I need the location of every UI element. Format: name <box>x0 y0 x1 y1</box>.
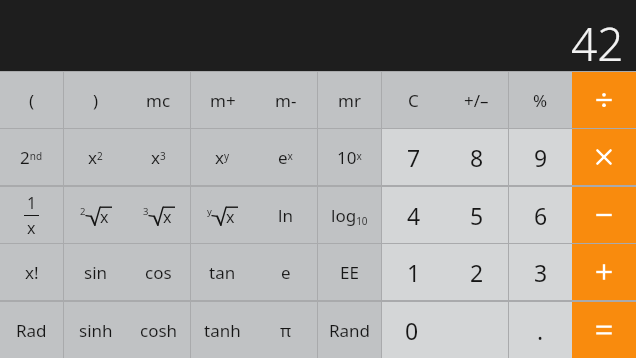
button[interactable]: ex <box>254 129 317 185</box>
staticText: Rad <box>16 319 47 342</box>
staticText: 9 <box>534 142 548 173</box>
button[interactable]: π <box>254 302 317 358</box>
staticText: 7 <box>407 142 421 173</box>
button[interactable]: Rad <box>0 302 63 358</box>
button[interactable]: e <box>254 244 317 300</box>
staticText: EE <box>340 261 359 284</box>
button[interactable]: ) <box>64 72 127 128</box>
staticText: cos <box>145 261 172 284</box>
button[interactable]: 5 <box>445 187 508 243</box>
button[interactable]: 3 <box>127 187 190 243</box>
button[interactable]: 1 <box>0 187 63 243</box>
staticText: C <box>408 89 419 112</box>
button[interactable]: 8 <box>445 129 508 185</box>
staticText: log10 <box>331 204 368 227</box>
button[interactable]: xy <box>191 129 254 185</box>
button[interactable]: ( <box>0 72 63 128</box>
staticText: x3 <box>151 146 166 169</box>
button[interactable]: 9 <box>509 129 572 185</box>
button[interactable]: tan <box>191 244 254 300</box>
staticText: x <box>226 206 235 228</box>
staticText: 2 <box>80 205 86 218</box>
button[interactable]: 4 <box>382 187 445 243</box>
staticText: 2nd <box>20 146 43 169</box>
button[interactable]: cos <box>127 244 190 300</box>
button[interactable]: sinh <box>64 302 127 358</box>
staticText: 5 <box>470 200 484 231</box>
staticText: mc <box>146 89 171 112</box>
staticText: 42 <box>571 12 624 71</box>
staticText: % <box>533 89 548 112</box>
staticText: 4 <box>407 200 421 231</box>
staticText: m+ <box>210 89 236 112</box>
staticText: . <box>537 315 544 346</box>
button[interactable]: 7 <box>382 129 445 185</box>
staticText: 3 <box>143 205 149 218</box>
button[interactable]: Multiply <box>572 129 636 185</box>
staticText: 0 <box>405 315 419 346</box>
button[interactable]: . <box>509 302 572 358</box>
button[interactable]: mc <box>127 72 190 128</box>
button[interactable]: % <box>509 72 572 128</box>
staticText: sin <box>84 261 108 284</box>
staticText: y <box>207 205 212 218</box>
button[interactable]: Divide <box>572 72 636 128</box>
button[interactable]: m- <box>254 72 317 128</box>
staticText: cosh <box>140 319 178 342</box>
staticText: Rand <box>329 319 371 342</box>
button[interactable]: Rand <box>318 302 381 358</box>
button[interactable]: 2 <box>64 187 127 243</box>
button[interactable]: log10 <box>318 187 381 243</box>
staticText: ( <box>29 89 35 112</box>
button[interactable]: cosh <box>127 302 190 358</box>
button[interactable]: EE <box>318 244 381 300</box>
staticText: m- <box>275 89 297 112</box>
staticText: x <box>100 206 109 228</box>
staticText: 3 <box>534 257 548 288</box>
button[interactable]: 3 <box>509 244 572 300</box>
staticText: tan <box>209 261 236 284</box>
staticText: 8 <box>470 142 484 173</box>
button[interactable]: 2nd <box>0 129 63 185</box>
staticText: π <box>280 319 292 342</box>
button[interactable]: 2 <box>445 244 508 300</box>
staticText: 1 <box>407 257 421 288</box>
staticText: mr <box>338 89 361 112</box>
staticText: 2 <box>470 257 484 288</box>
button[interactable]: 10x <box>318 129 381 185</box>
button[interactable]: ln <box>254 187 317 243</box>
staticText: 10x <box>337 146 362 169</box>
button[interactable]: x2 <box>64 129 127 185</box>
button[interactable]: 1 <box>382 244 445 300</box>
staticText: ln <box>278 204 293 227</box>
button[interactable]: x3 <box>127 129 190 185</box>
staticText: 6 <box>534 200 548 231</box>
button[interactable]: 6 <box>509 187 572 243</box>
staticText: 1 <box>27 192 37 214</box>
button[interactable]: +/– <box>445 72 508 128</box>
staticText: x2 <box>88 146 103 169</box>
button[interactable]: 0 <box>382 302 508 358</box>
button[interactable]: mr <box>318 72 381 128</box>
staticText: e <box>281 261 291 284</box>
button[interactable]: Equals <box>572 302 636 358</box>
button[interactable]: m+ <box>191 72 254 128</box>
button[interactable]: C <box>382 72 445 128</box>
button[interactable]: sin <box>64 244 127 300</box>
button[interactable]: x! <box>0 244 63 300</box>
staticText: +/– <box>464 89 489 112</box>
staticText: ex <box>278 146 293 169</box>
button[interactable]: Add <box>572 244 636 300</box>
staticText: x <box>27 217 36 239</box>
staticText: xy <box>215 146 230 169</box>
staticText: x <box>163 206 172 228</box>
staticText: ) <box>93 89 99 112</box>
staticText: sinh <box>79 319 113 342</box>
button[interactable]: y <box>191 187 254 243</box>
staticText: tanh <box>204 319 241 342</box>
button[interactable]: Subtract <box>572 187 636 243</box>
staticText: x! <box>25 261 39 284</box>
button[interactable]: tanh <box>191 302 254 358</box>
